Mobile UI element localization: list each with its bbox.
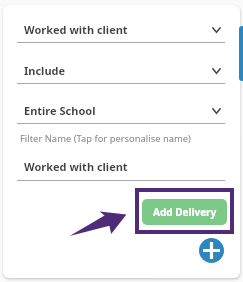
button[interactable]: Entire School <box>17 99 225 123</box>
staticText: Worked with client <box>24 159 128 174</box>
staticText: Filter Name (Tap for personalise name) <box>20 132 191 145</box>
button[interactable]: Add <box>199 238 224 263</box>
staticText: Worked with client <box>24 22 128 37</box>
staticText: Entire School <box>24 103 96 118</box>
button[interactable]: Worked with client <box>17 18 225 42</box>
button[interactable]: Add Delivery <box>142 199 227 225</box>
button[interactable]: Worked with client <box>17 156 225 181</box>
staticText: Include <box>24 63 66 78</box>
button[interactable]: Include <box>17 59 225 83</box>
staticText: Add Delivery <box>153 205 217 219</box>
